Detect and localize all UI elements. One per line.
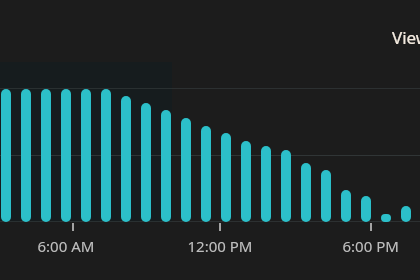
button[interactable]: Sleep activity chart xyxy=(0,0,420,280)
